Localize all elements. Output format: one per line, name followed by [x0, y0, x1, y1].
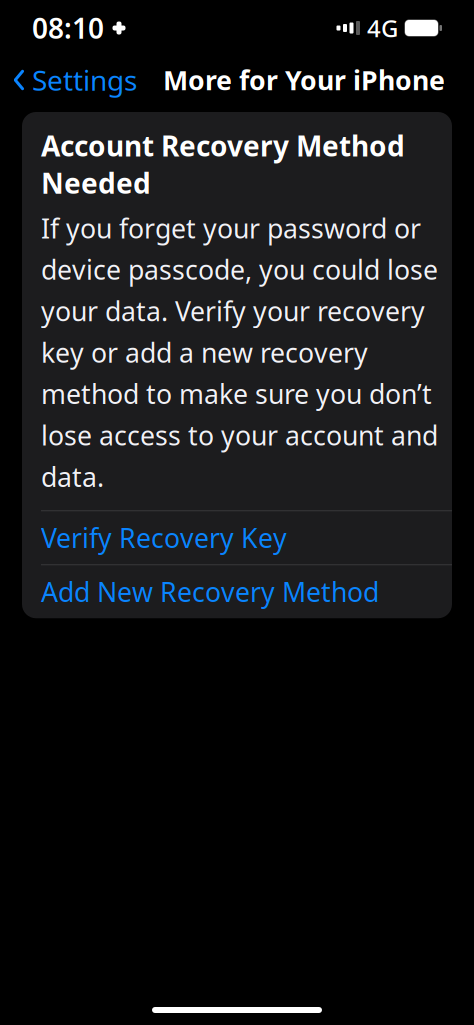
- button[interactable]: Add New Recovery Method: [22, 564, 452, 618]
- button[interactable]: Verify Recovery Key: [22, 510, 452, 564]
- staticText: Account Recovery Method Needed: [41, 127, 405, 201]
- staticText: Settings: [32, 61, 137, 99]
- staticText: Verify Recovery Key: [41, 520, 287, 555]
- staticText: 08:10: [32, 9, 104, 47]
- staticText: More for Your iPhone: [163, 62, 445, 98]
- staticText: If you forget your password or device pa…: [41, 210, 438, 494]
- staticText: 4G: [367, 12, 398, 44]
- staticText: Add New Recovery Method: [41, 574, 379, 609]
- button[interactable]: Settings: [0, 55, 145, 105]
